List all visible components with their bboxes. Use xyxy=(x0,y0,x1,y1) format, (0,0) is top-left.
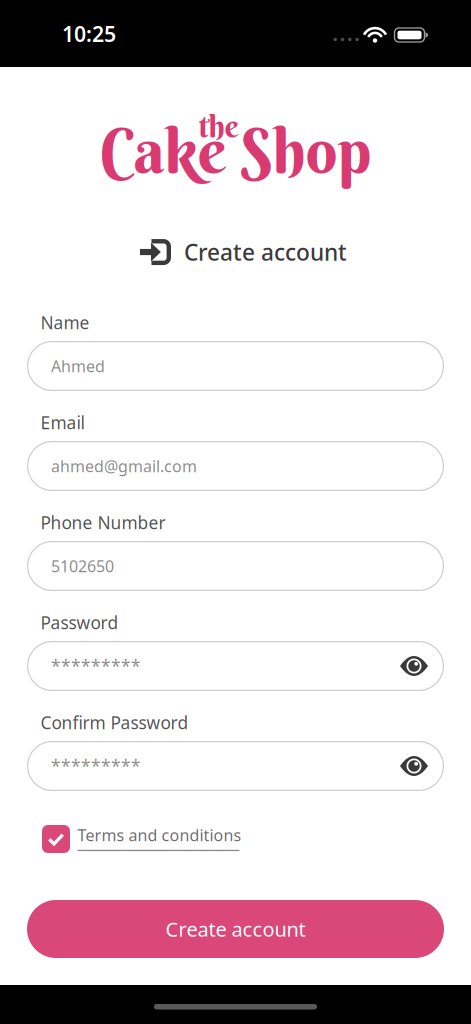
staticText: Cake Shop xyxy=(99,112,371,190)
staticText: Email xyxy=(40,411,84,434)
staticText: Confirm Password xyxy=(40,711,188,734)
staticText: ahmed@gmail.com xyxy=(51,455,197,477)
staticText: Phone Number xyxy=(40,511,165,534)
staticText: Create account xyxy=(184,237,347,267)
staticText: ********* xyxy=(51,654,141,677)
button[interactable]: Accept terms and conditions xyxy=(42,825,70,853)
staticText: ********* xyxy=(51,754,141,777)
button[interactable]: Terms and conditions xyxy=(77,824,241,851)
button[interactable]: Show password xyxy=(400,656,444,676)
staticText: 5102650 xyxy=(51,555,114,577)
button[interactable]: Show password xyxy=(400,756,444,776)
staticText: Terms and conditions xyxy=(77,824,241,846)
staticText: Name xyxy=(40,311,89,334)
button[interactable]: Create account xyxy=(27,900,444,958)
staticText: Password xyxy=(40,611,118,634)
staticText: 10:25 xyxy=(62,19,116,48)
staticText: Ahmed xyxy=(51,355,105,377)
staticText: Create account xyxy=(165,916,305,942)
staticText: the xyxy=(198,107,238,146)
